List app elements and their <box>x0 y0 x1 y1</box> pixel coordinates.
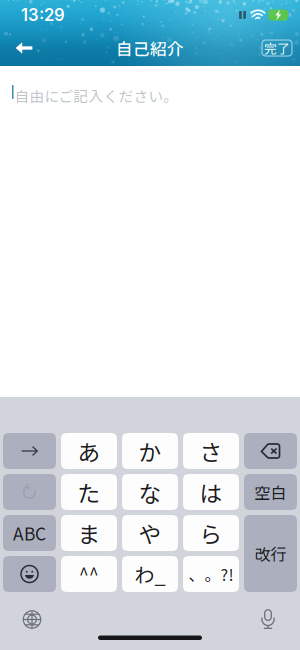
staticText: さ <box>199 435 222 467</box>
staticText: 改行 <box>254 542 286 565</box>
button[interactable]: Dictation <box>246 603 290 635</box>
staticText: 、。?! <box>188 562 233 586</box>
button[interactable] <box>244 433 297 469</box>
staticText: ま <box>77 517 100 549</box>
button[interactable]: ABC <box>3 515 56 551</box>
button[interactable]: 完了 <box>258 36 296 60</box>
button[interactable]: Back <box>4 32 44 64</box>
button[interactable]: 、。?! <box>183 556 239 592</box>
staticText: は <box>199 476 222 508</box>
button[interactable]: ま <box>61 515 117 551</box>
button[interactable]: Switch keyboard <box>10 603 54 635</box>
button[interactable]: や <box>122 515 178 551</box>
button[interactable] <box>3 556 56 592</box>
staticText: あ <box>77 435 100 467</box>
button[interactable]: 改行 <box>244 515 297 592</box>
button[interactable]: あ <box>61 433 117 469</box>
button[interactable]: た <box>61 474 117 510</box>
button[interactable]: は <box>183 474 239 510</box>
button[interactable] <box>3 474 56 510</box>
staticText: 完了 <box>264 39 290 57</box>
button[interactable]: ^^ <box>61 556 117 592</box>
staticText: ABC <box>13 520 46 546</box>
staticText: か <box>138 435 161 467</box>
staticText: わ_ <box>134 559 165 588</box>
staticText: 自己紹介 <box>116 36 184 60</box>
button[interactable]: ら <box>183 515 239 551</box>
button[interactable]: わ_ <box>122 556 178 592</box>
staticText: 13:29 <box>21 5 65 25</box>
staticText: ら <box>199 517 222 549</box>
staticText: な <box>138 476 161 508</box>
staticText: 空白 <box>254 480 286 504</box>
staticText: や <box>138 517 161 549</box>
button[interactable] <box>3 433 56 469</box>
staticText: た <box>77 476 100 508</box>
button[interactable]: 空白 <box>244 474 297 510</box>
staticText: ^^ <box>79 561 99 587</box>
staticText: 自由にご記入ください。 <box>14 85 178 106</box>
button[interactable]: さ <box>183 433 239 469</box>
button[interactable]: か <box>122 433 178 469</box>
button[interactable]: な <box>122 474 178 510</box>
